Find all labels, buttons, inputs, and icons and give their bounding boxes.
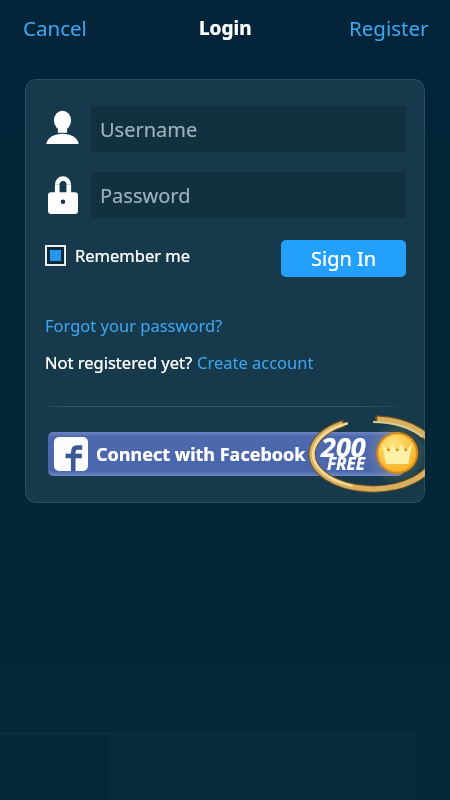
button[interactable]: Connect with Facebook [48,432,403,476]
button[interactable]: Remember me [43,242,193,268]
staticText: Username [100,116,198,143]
staticText: Sign In [311,245,377,272]
button[interactable]: Password [91,172,406,218]
staticText: Cancel [23,14,87,42]
button[interactable]: Create account [197,351,314,373]
staticText: Register [349,14,429,42]
staticText: Connect with Facebook [96,442,306,467]
button[interactable]: Register [337,5,441,51]
staticText: Create account [197,351,314,373]
staticText: Password [100,182,191,209]
button[interactable]: Sign In [281,240,406,277]
staticText: Remember me [75,244,191,266]
button[interactable]: Forgot your password? [42,310,226,340]
button[interactable]: Cancel [11,5,99,51]
button[interactable]: Username [91,106,406,152]
other: User [46,110,79,144]
staticText: FREE [327,452,366,475]
staticText: Not registered yet? [45,351,197,373]
other: Password [48,175,78,214]
staticText: Login [199,15,252,41]
staticText: Forgot your password? [45,314,223,336]
staticText: 200 [321,428,366,465]
